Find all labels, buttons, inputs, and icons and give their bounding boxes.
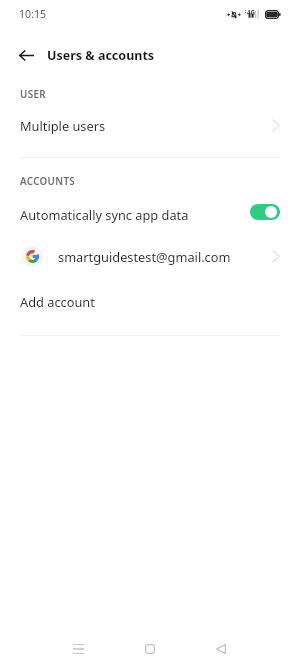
staticText: Automatically sync app data — [20, 206, 189, 223]
button[interactable]: Automatically sync app data — [0, 199, 300, 229]
button[interactable]: smartguidestest@gmail.com — [0, 229, 300, 283]
staticText: ACCOUNTS — [20, 175, 76, 188]
button[interactable]: Home — [133, 632, 167, 666]
staticText: 4G — [247, 8, 256, 16]
staticText: Add account — [20, 293, 95, 310]
button[interactable]: Back — [9, 38, 43, 72]
button[interactable]: Back — [204, 632, 238, 666]
button[interactable]: Recent apps — [61, 632, 95, 666]
staticText: 10:15 — [19, 7, 47, 21]
button[interactable]: Add account — [0, 283, 300, 320]
staticText: Multiple users — [20, 117, 106, 134]
staticText: Users & accounts — [47, 47, 155, 64]
staticText: smartguidestest@gmail.com — [58, 248, 231, 265]
button[interactable]: Multiple users — [0, 106, 300, 144]
staticText: USER — [20, 88, 46, 101]
